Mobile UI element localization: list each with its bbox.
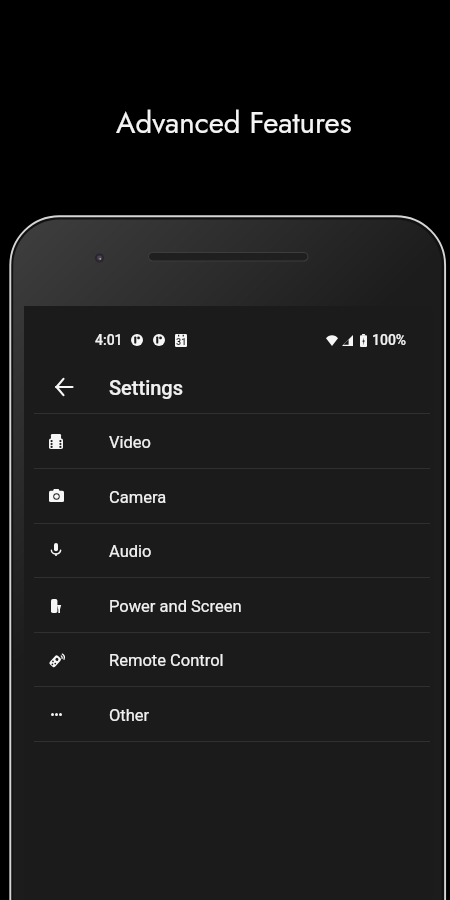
- staticText: Other: [109, 706, 150, 725]
- staticText: Remote Control: [109, 651, 224, 670]
- staticText: Power and Screen: [109, 597, 242, 616]
- staticText: Advanced Features: [116, 102, 352, 144]
- button[interactable]: Back: [46, 369, 82, 405]
- staticText: Camera: [109, 488, 167, 507]
- staticText: 4:01: [95, 332, 123, 348]
- staticText: Audio: [109, 542, 152, 561]
- button[interactable]: Video: [24, 414, 433, 469]
- button[interactable]: Audio: [24, 523, 433, 578]
- button[interactable]: Other: [24, 687, 433, 742]
- staticText: 100%: [372, 332, 407, 348]
- staticText: 31: [176, 337, 187, 347]
- button[interactable]: Power and Screen: [24, 578, 433, 633]
- button[interactable]: Remote Control: [24, 632, 433, 687]
- button[interactable]: Camera: [24, 469, 433, 524]
- staticText: Settings: [109, 376, 184, 399]
- staticText: Video: [109, 433, 151, 452]
